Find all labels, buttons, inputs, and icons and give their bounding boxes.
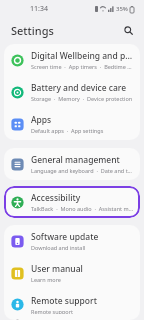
button[interactable]: Accessibility [4,186,140,218]
staticText: Settings [11,23,54,38]
staticText: Software update [31,231,99,243]
button[interactable]: Remote support [4,289,140,320]
button[interactable]: General management [4,148,140,180]
button[interactable]: Search [119,21,137,39]
staticText: Storage · Memory · Device protection [31,95,133,102]
staticText: Language and keyboard · Date and time [31,167,133,174]
staticText: Digital Wellbeing and parental controls [31,50,133,62]
staticText: Learn more [31,276,61,283]
staticText: Screen time · App timers · Bedtime mode [31,63,133,70]
staticText: User manual [31,263,83,275]
button[interactable]: User manual [4,257,140,289]
staticText: Default apps · App settings [31,127,104,134]
button[interactable]: Digital Wellbeing and parental controls [4,44,140,76]
staticText: TalkBack · Mono audio · Assistant menu [31,205,133,212]
staticText: Remote support [31,308,73,314]
staticText: 11:34 [30,4,48,14]
staticText: General management [31,154,120,166]
staticText: Apps [31,114,52,126]
button[interactable]: Apps [4,108,140,140]
button[interactable]: Software update [4,225,140,257]
staticText: Accessibility [31,192,81,204]
staticText: 35% [116,5,128,13]
staticText: Battery and device care [31,82,127,94]
staticText: Download and install [31,244,86,251]
staticText: Remote support [31,295,97,307]
button[interactable]: Battery and device care [4,76,140,108]
